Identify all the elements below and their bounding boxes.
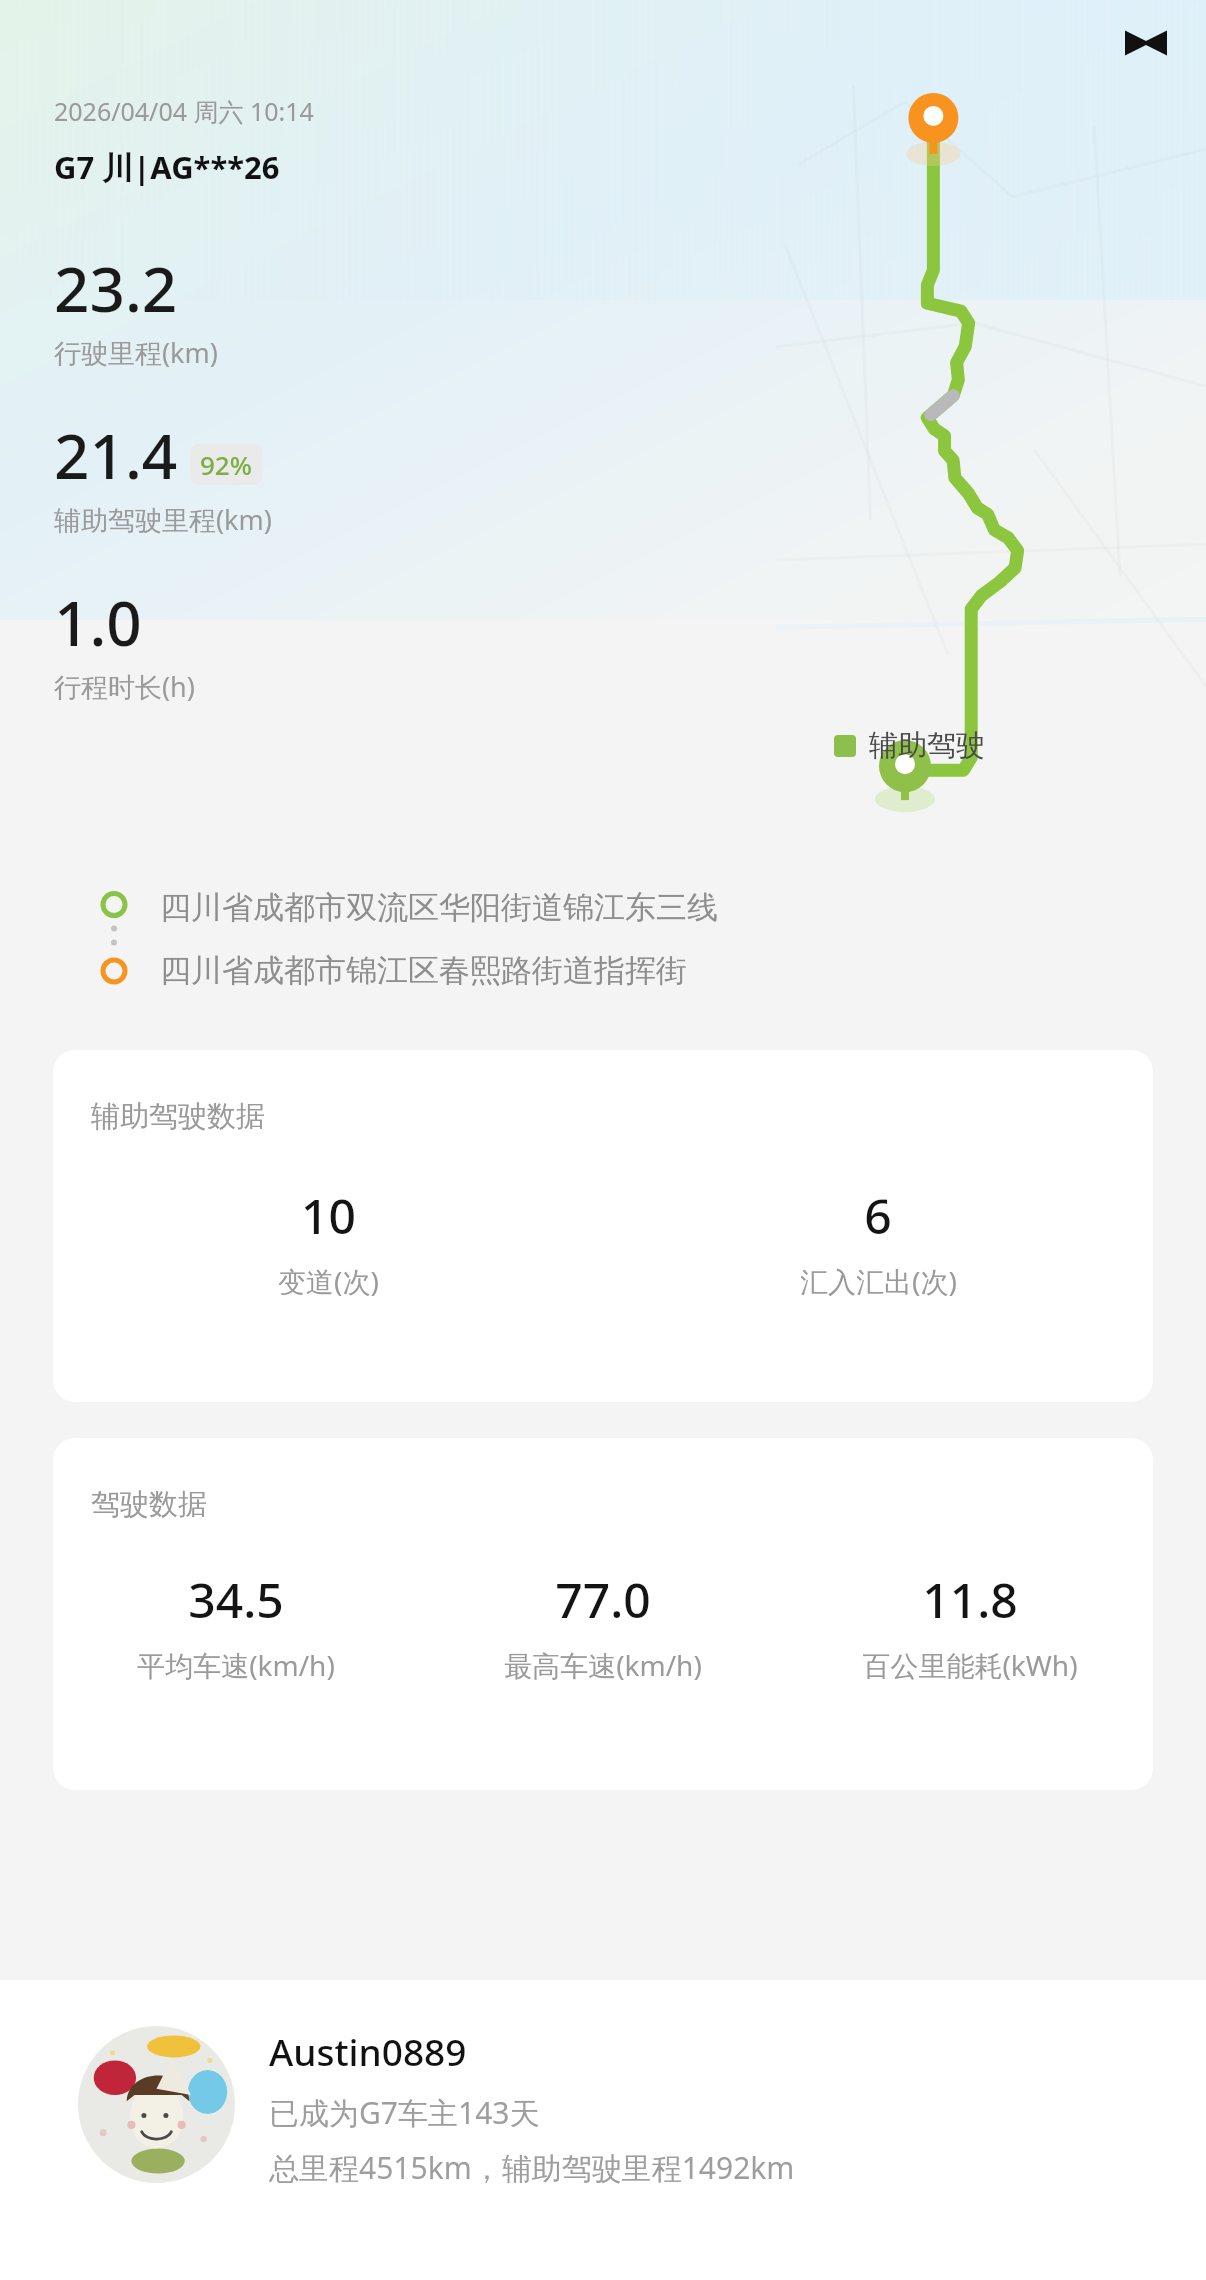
staticText: 21.4 (54, 413, 178, 497)
staticText: 四川省成都市双流区华阳街道锦江东三线 (160, 888, 718, 927)
staticText: 汇入汇出(次) (800, 1262, 957, 1300)
staticText: 行驶里程(km) (54, 334, 218, 371)
staticText: 辅助驾驶 (869, 727, 985, 764)
button[interactable]: Austin0889 (0, 1980, 1206, 2280)
staticText: 92% (200, 447, 252, 482)
button[interactable]: Close (1116, 13, 1176, 73)
button[interactable]: 驾驶数据 (53, 1438, 1153, 1790)
staticText: 平均车速(km/h) (137, 1646, 335, 1684)
staticText: 23.2 (54, 246, 178, 330)
staticText: 2026/04/04 周六 10:14 (54, 94, 314, 128)
staticText: 77.0 (555, 1567, 651, 1632)
staticText: 1.0 (54, 580, 142, 664)
staticText: 已成为G7车主143天 (269, 2092, 540, 2133)
staticText: 行程时长(h) (54, 668, 195, 705)
staticText: 辅助驾驶里程(km) (54, 501, 272, 538)
staticText: 驾驶数据 (91, 1486, 207, 1523)
staticText: 34.5 (188, 1567, 284, 1632)
staticText: Austin0889 (269, 2026, 467, 2076)
staticText: 辅助驾驶数据 (91, 1098, 265, 1135)
button[interactable]: 辅助驾驶数据 (53, 1050, 1153, 1402)
staticText: 百公里能耗(kWh) (862, 1646, 1078, 1684)
staticText: 10 (301, 1183, 356, 1248)
staticText: 四川省成都市锦江区春熙路街道指挥街 (160, 951, 687, 990)
staticText: 总里程4515km，辅助驾驶里程1492km (269, 2147, 795, 2188)
staticText: 变道(次) (278, 1262, 379, 1300)
staticText: 11.8 (922, 1567, 1018, 1632)
staticText: 6 (864, 1183, 892, 1248)
staticText: G7 川|AG***26 (54, 146, 280, 188)
staticText: 最高车速(km/h) (504, 1646, 702, 1684)
